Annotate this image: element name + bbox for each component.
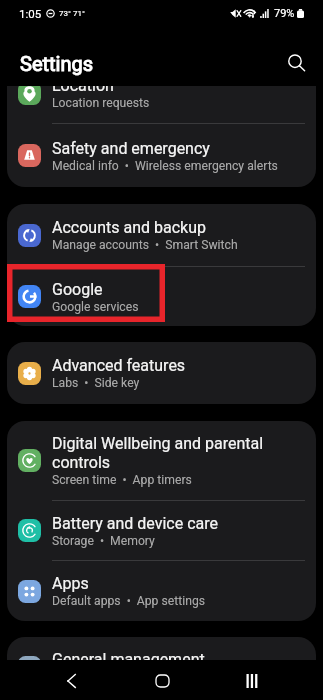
staticText: Google bbox=[52, 280, 103, 299]
button[interactable]: Battery and device care bbox=[7, 501, 316, 560]
staticText: Apps bbox=[52, 574, 89, 593]
staticText: Medical info • Wireless emergency alerts bbox=[52, 159, 278, 173]
staticText: Labs • Side key bbox=[52, 376, 140, 390]
button[interactable]: Recent apps bbox=[229, 661, 275, 700]
button[interactable]: Location bbox=[7, 86, 316, 123]
button[interactable]: Accounts and backup bbox=[7, 204, 316, 266]
staticText: Google services bbox=[52, 300, 139, 314]
button[interactable]: Apps bbox=[7, 561, 316, 621]
staticText: Accounts and backup bbox=[52, 218, 206, 237]
button[interactable]: General management bbox=[7, 637, 316, 660]
button[interactable]: Home bbox=[139, 661, 185, 700]
button[interactable]: Google bbox=[7, 267, 316, 326]
staticText: 1:05 bbox=[19, 7, 42, 20]
button[interactable]: Advanced features bbox=[7, 342, 316, 404]
staticText: Storage • Memory bbox=[52, 534, 155, 548]
button[interactable]: Digital Wellbeing and parental controls bbox=[7, 421, 316, 500]
button[interactable]: Back bbox=[48, 661, 94, 700]
staticText: Manage accounts • Smart Switch bbox=[52, 238, 238, 252]
staticText: Advanced features bbox=[52, 356, 186, 375]
button[interactable]: Safety and emergency bbox=[7, 124, 316, 187]
staticText: Screen time • App timers bbox=[52, 473, 192, 487]
button[interactable]: Search bbox=[278, 45, 314, 81]
staticText: Digital Wellbeing and parental controls bbox=[52, 434, 302, 472]
staticText: Settings bbox=[20, 52, 94, 75]
staticText: 79% bbox=[274, 7, 295, 20]
staticText: Location requests bbox=[52, 96, 150, 110]
staticText: Default apps • App settings bbox=[52, 594, 206, 608]
staticText: 73° 71° bbox=[59, 9, 85, 18]
staticText: General management bbox=[52, 650, 205, 660]
staticText: Safety and emergency bbox=[52, 139, 210, 158]
staticText: Location bbox=[52, 86, 114, 95]
staticText: Battery and device care bbox=[52, 514, 218, 533]
